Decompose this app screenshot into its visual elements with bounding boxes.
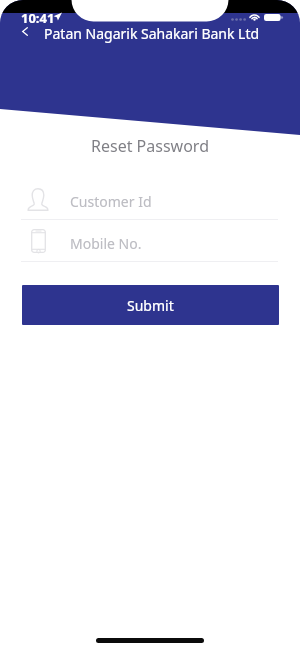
staticText: Customer Id	[70, 192, 152, 211]
staticText: Patan Nagarik Sahakari Bank Ltd	[44, 24, 260, 43]
button[interactable]: Customer Id	[21, 186, 278, 220]
staticText: Reset Password	[0, 135, 300, 157]
staticText: Submit	[127, 296, 174, 315]
staticText: Mobile No.	[70, 234, 142, 253]
button[interactable]: Mobile No.	[21, 228, 278, 262]
button[interactable]: Back	[10, 19, 40, 43]
staticText: 10:41	[21, 9, 55, 27]
button[interactable]: Submit	[22, 285, 279, 325]
